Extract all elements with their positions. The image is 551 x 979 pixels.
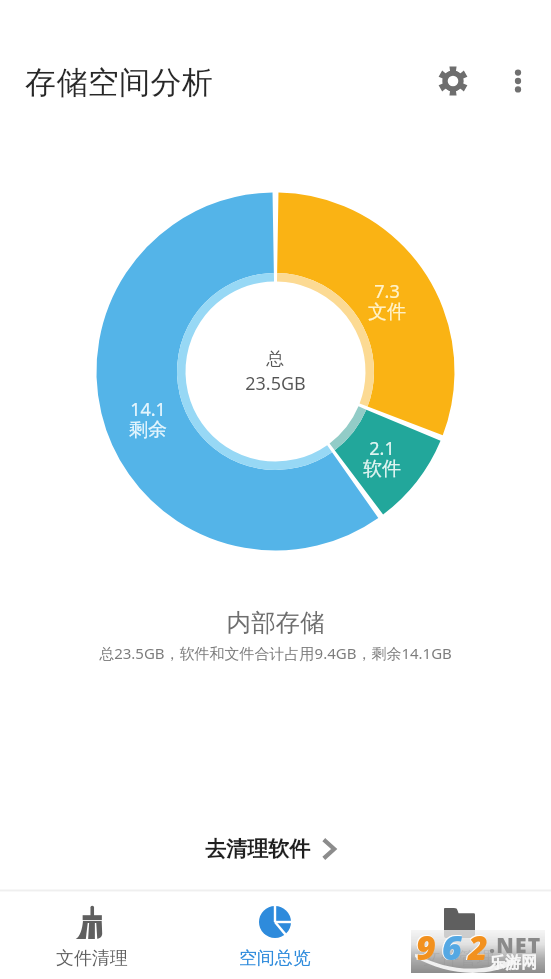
staticText: 剩余 [88, 418, 208, 442]
button[interactable]: 空间总览 [183, 892, 367, 979]
staticText: 6 [442, 924, 462, 970]
staticText: 14.1 [88, 397, 208, 422]
staticText: 文件清理 [56, 947, 128, 970]
staticText: 6 [441, 923, 462, 971]
staticText: 乐游网 [489, 953, 537, 973]
staticText: 2 [468, 924, 488, 970]
staticText: 2.1 [322, 436, 442, 461]
staticText: 9 [416, 924, 436, 970]
button[interactable]: More options [491, 54, 545, 108]
staticText: 总23.5GB，软件和文件合计占用9.4GB，剩余14.1GB [0, 643, 551, 663]
staticText: 空间总览 [239, 947, 311, 970]
staticText: .NET [489, 931, 542, 960]
staticText: 9 [415, 923, 436, 971]
button[interactable]: 去清理软件 [0, 812, 551, 886]
button[interactable]: 文件管理 [367, 892, 551, 979]
button[interactable]: Settings [426, 54, 480, 108]
staticText: 存储空间分析 [25, 63, 214, 102]
staticText: 内部存储 [0, 607, 551, 638]
staticText: 7.3 [327, 279, 447, 304]
staticText: 23.5GB [195, 371, 356, 396]
staticText: 2 [467, 923, 488, 971]
staticText: 文件管理 [423, 947, 495, 970]
staticText: 总 [195, 348, 356, 371]
staticText: 软件 [322, 457, 442, 481]
staticText: 去清理软件 [205, 836, 310, 862]
button[interactable]: 文件清理 [0, 892, 183, 979]
staticText: 文件 [327, 300, 447, 324]
